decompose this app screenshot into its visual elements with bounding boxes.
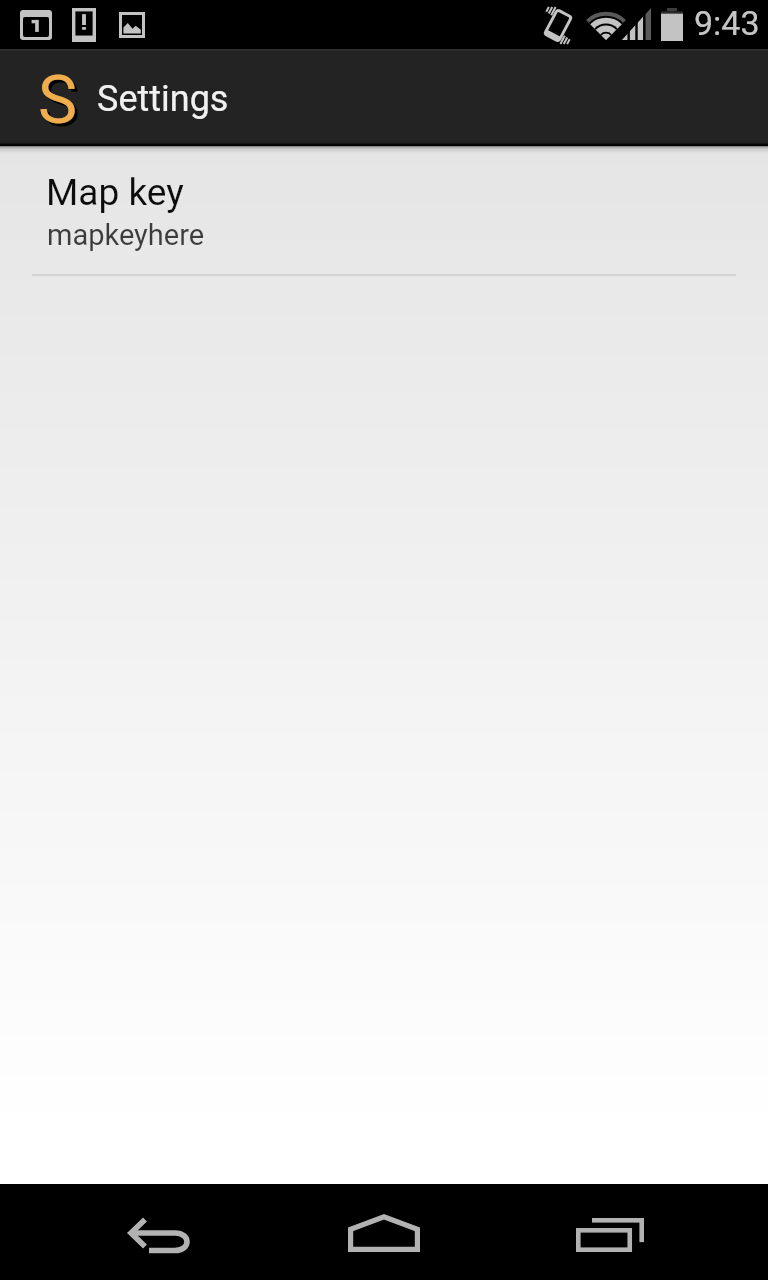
button[interactable]: Home [309, 1184, 459, 1280]
button[interactable]: Back [85, 1184, 235, 1280]
staticText: S [38, 62, 78, 139]
staticText: 9:43 [694, 3, 760, 43]
staticText: Map key [46, 171, 184, 214]
staticText: S [41, 65, 81, 142]
staticText: Settings [97, 78, 229, 120]
button[interactable]: Recent apps [535, 1184, 685, 1280]
staticText: mapkeyhere [47, 218, 205, 252]
button[interactable]: Map key [0, 146, 768, 276]
